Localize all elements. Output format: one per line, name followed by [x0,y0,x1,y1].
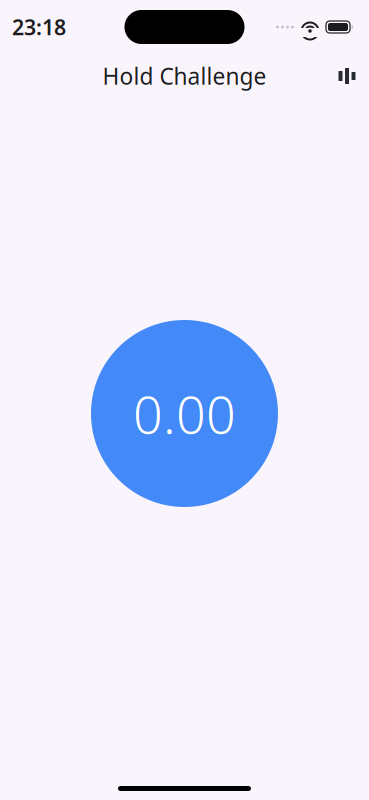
staticText: 23:18 [12,13,66,41]
button[interactable]: Hold timer, 0.00 seconds [91,320,278,507]
staticText: 0.00 [133,379,236,448]
staticText: Hold Challenge [102,61,266,91]
button[interactable]: Statistics [325,54,369,98]
